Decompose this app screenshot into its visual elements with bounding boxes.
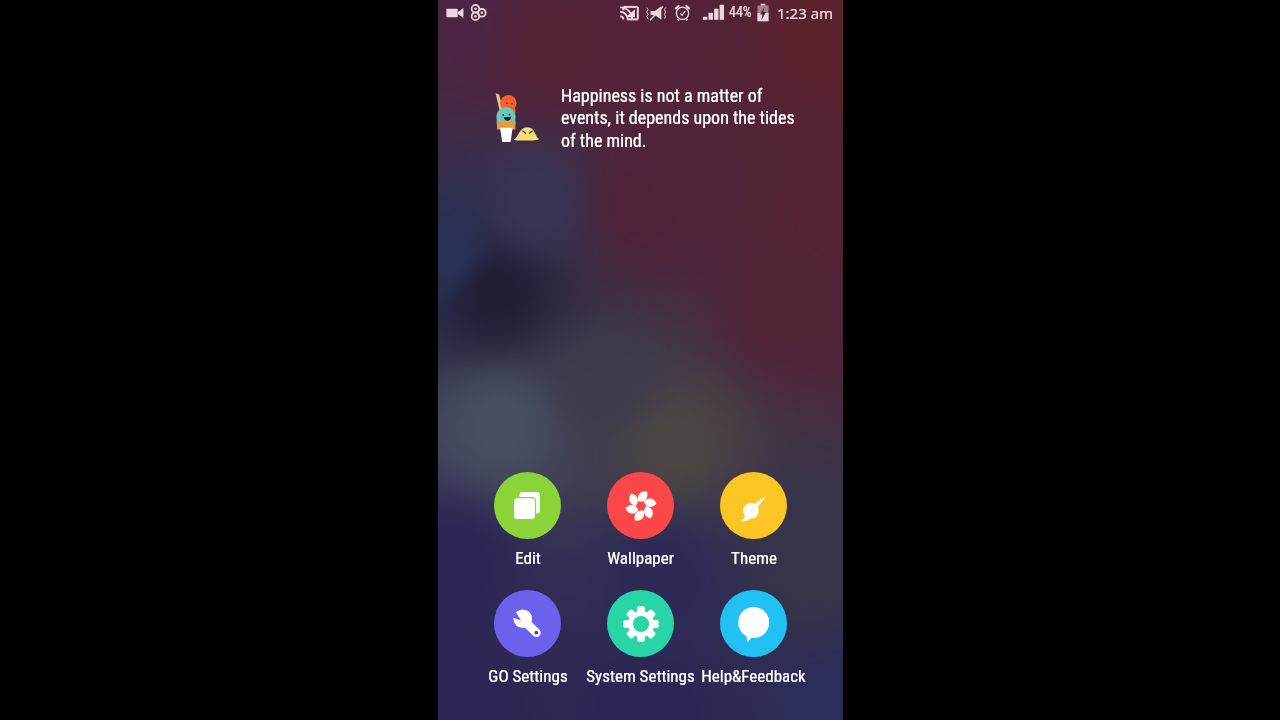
staticText: System Settings [586, 666, 695, 686]
staticText: Edit [515, 548, 541, 568]
staticText: 1:23 am [777, 3, 834, 23]
staticText: 44% [729, 4, 752, 20]
button[interactable]: Theme [697, 472, 810, 568]
button[interactable]: Wallpaper [584, 472, 697, 568]
button[interactable]: System Settings [584, 590, 697, 686]
button[interactable]: GO Settings [471, 590, 584, 686]
staticText: Theme [731, 548, 777, 568]
staticText: GO Settings [488, 666, 568, 686]
staticText: Happiness is not a matter of events, it … [561, 85, 821, 151]
staticText: Wallpaper [607, 548, 674, 568]
staticText: Help&Feedback [701, 666, 806, 686]
button[interactable]: Edit [471, 472, 584, 568]
button[interactable]: Help&Feedback [697, 590, 810, 686]
